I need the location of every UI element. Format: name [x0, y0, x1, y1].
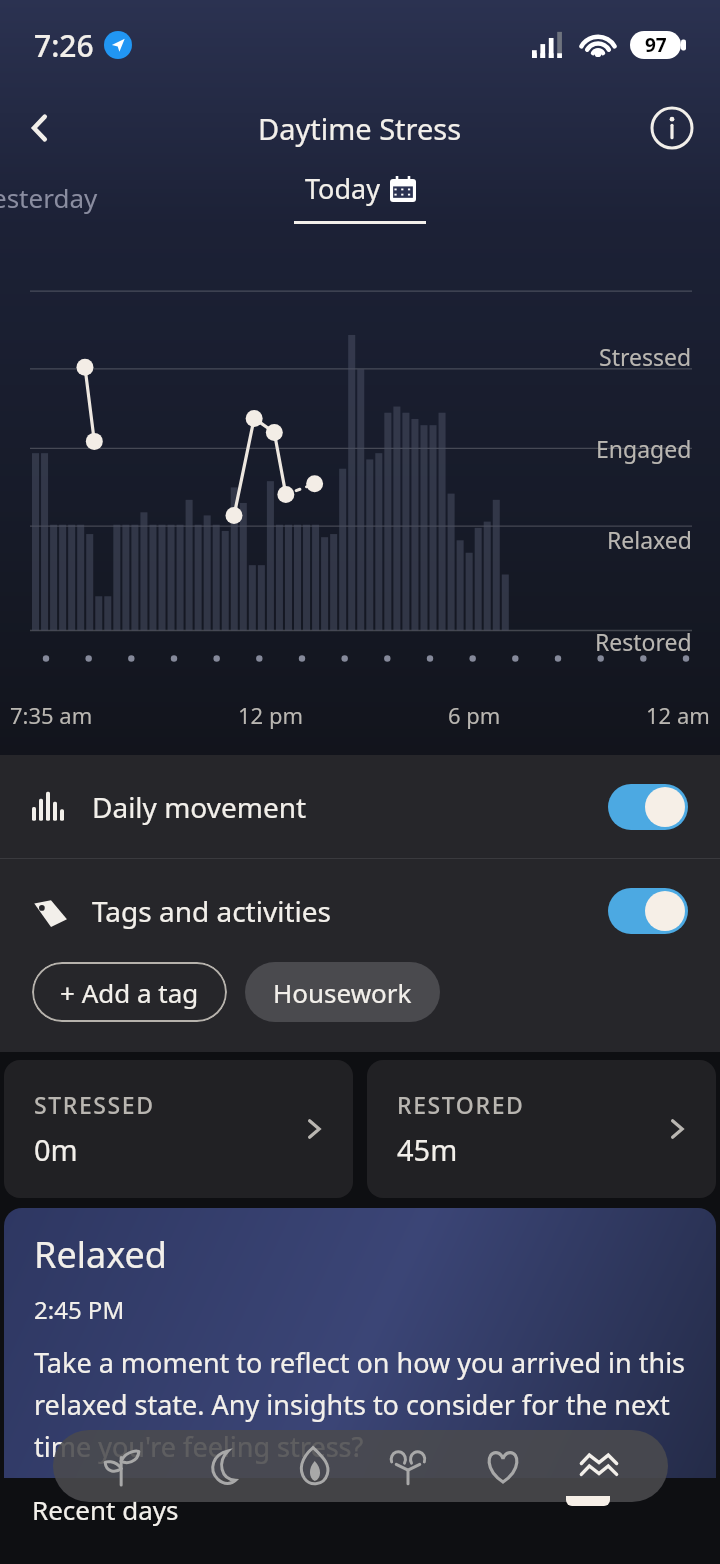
button[interactable]: Relaxed: [4, 1208, 716, 1478]
staticText: STRESSED: [34, 1089, 155, 1120]
staticText: Relaxed: [34, 1230, 167, 1279]
button[interactable]: Toggle: [608, 888, 688, 934]
staticText: 45m: [397, 1130, 458, 1169]
staticText: Daily movement: [92, 788, 307, 826]
staticText: 7:35 am: [10, 700, 93, 730]
staticText: esterday: [0, 180, 98, 215]
button[interactable]: Today: [294, 170, 426, 224]
staticText: + Add a tag: [60, 975, 199, 1010]
button[interactable]: Activity: [370, 1430, 446, 1502]
button[interactable]: Tags and activities: [0, 859, 720, 962]
button[interactable]: + Add a tag: [32, 962, 227, 1022]
staticText: Recent days: [32, 1492, 179, 1527]
button[interactable]: Heart: [465, 1430, 541, 1502]
button[interactable]: Housework: [245, 962, 440, 1022]
button[interactable]: Info: [646, 102, 698, 154]
staticText: 12 am: [646, 700, 710, 730]
button[interactable]: STRESSED: [4, 1060, 353, 1198]
button[interactable]: Toggle: [608, 784, 688, 830]
staticText: 12 pm: [238, 700, 303, 730]
button[interactable]: Energy: [275, 1430, 351, 1502]
staticText: Tags and activities: [92, 892, 331, 930]
staticText: 7:26: [34, 25, 94, 66]
staticText: Engaged: [596, 433, 692, 464]
button[interactable]: RESTORED: [367, 1060, 716, 1198]
button[interactable]: Body: [84, 1430, 160, 1502]
staticText: Take a moment to reflect on how you arri…: [34, 1344, 690, 1465]
button[interactable]: Sleep: [180, 1430, 256, 1502]
staticText: Housework: [273, 975, 412, 1010]
staticText: 2:45 PM: [34, 1293, 125, 1326]
staticText: 6 pm: [448, 700, 501, 730]
staticText: Daytime Stress: [258, 109, 462, 148]
button[interactable]: Daily movement: [0, 755, 720, 858]
staticText: Relaxed: [607, 524, 692, 555]
staticText: Today: [305, 170, 380, 207]
staticText: 0m: [34, 1130, 78, 1169]
button[interactable]: Stress: [561, 1430, 637, 1502]
button[interactable]: Back: [12, 100, 68, 156]
staticText: RESTORED: [397, 1089, 525, 1120]
staticText: Restored: [595, 626, 692, 657]
staticText: 97: [645, 32, 667, 58]
staticText: Stressed: [599, 341, 692, 372]
